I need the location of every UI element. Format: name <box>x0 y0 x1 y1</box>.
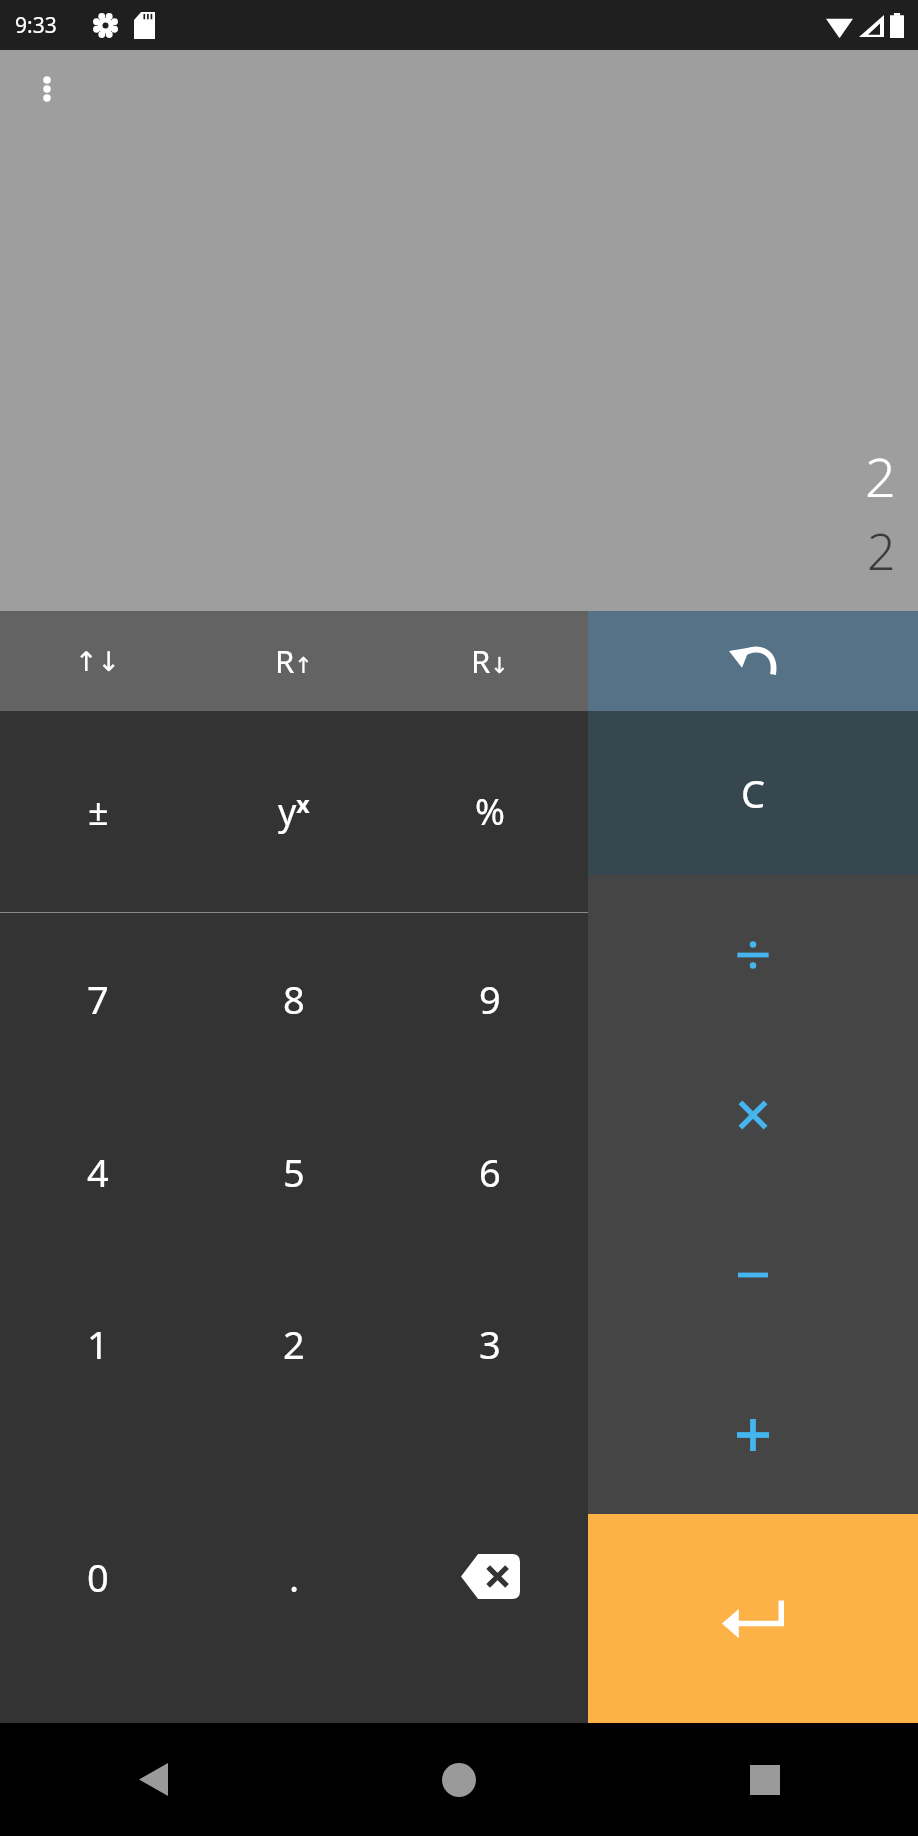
staticText: R↑ <box>275 640 313 682</box>
staticText: 3 <box>479 1318 501 1370</box>
staticText: ± <box>88 787 109 836</box>
button[interactable]: Plus <box>588 1355 918 1514</box>
staticText: 2 <box>283 1318 305 1370</box>
button[interactable]: 9 <box>392 913 588 1085</box>
button[interactable]: Back <box>0 1723 306 1836</box>
button[interactable]: ↑↓ <box>0 611 196 711</box>
staticText: yx <box>278 787 310 836</box>
staticText: 9 <box>479 973 501 1025</box>
button[interactable]: ± <box>0 711 196 912</box>
staticText: % <box>475 787 505 836</box>
staticText: 0 <box>87 1551 109 1603</box>
button[interactable]: 6 <box>392 1085 588 1258</box>
button[interactable]: Minus <box>588 1195 918 1355</box>
staticText: . <box>289 1551 300 1603</box>
button[interactable]: Multiply <box>588 1035 918 1195</box>
button[interactable]: Divide <box>588 875 918 1035</box>
button[interactable]: R↓ <box>392 611 588 711</box>
button[interactable]: yx <box>196 711 392 912</box>
button[interactable]: Home <box>306 1723 612 1836</box>
staticText: 8 <box>283 973 305 1025</box>
button[interactable]: 4 <box>0 1085 196 1258</box>
staticText: 1 <box>87 1318 109 1370</box>
button[interactable]: Equals <box>588 1514 918 1723</box>
staticText: 5 <box>283 1146 305 1198</box>
staticText: R↓ <box>471 640 509 682</box>
button[interactable]: Undo <box>588 611 918 711</box>
staticText: 9:33 <box>15 11 57 40</box>
button[interactable]: 8 <box>196 913 392 1085</box>
staticText: 7 <box>87 973 109 1025</box>
button[interactable]: 2 <box>196 1258 392 1430</box>
button[interactable]: 7 <box>0 913 196 1085</box>
staticText: 2 <box>867 517 896 585</box>
staticText: ↑↓ <box>75 646 121 677</box>
staticText: C <box>741 767 766 819</box>
button[interactable]: % <box>392 711 588 912</box>
button[interactable]: C <box>588 711 918 875</box>
button[interactable]: 5 <box>196 1085 392 1258</box>
button[interactable]: Recents <box>612 1723 918 1836</box>
button[interactable]: 0 <box>0 1430 196 1723</box>
staticText: 4 <box>87 1146 109 1198</box>
staticText: 6 <box>479 1146 501 1198</box>
button[interactable]: R↑ <box>196 611 392 711</box>
button[interactable]: Backspace <box>392 1430 588 1723</box>
button[interactable]: More options <box>24 66 70 112</box>
button[interactable]: . <box>196 1430 392 1723</box>
staticText: 2 <box>865 439 896 513</box>
button[interactable]: 1 <box>0 1258 196 1430</box>
button[interactable]: 3 <box>392 1258 588 1430</box>
